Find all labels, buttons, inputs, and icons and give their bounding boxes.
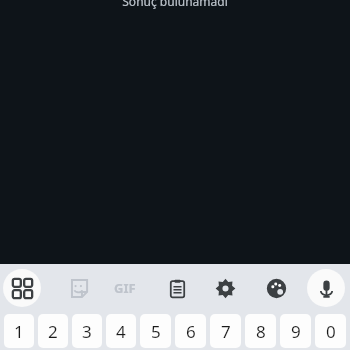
staticText: 0 [326, 320, 336, 343]
button[interactable]: 9 [280, 314, 311, 348]
button[interactable]: Voice input [307, 269, 345, 307]
button[interactable]: Stickers [59, 269, 97, 307]
staticText: 2 [48, 320, 58, 343]
staticText: 5 [151, 320, 161, 343]
staticText: 8 [256, 320, 266, 343]
button[interactable]: 1 [4, 314, 34, 348]
button[interactable]: 7 [210, 314, 241, 348]
staticText: 4 [116, 320, 126, 343]
button[interactable]: Apps [3, 269, 41, 307]
staticText: 7 [221, 320, 231, 343]
button[interactable]: 8 [245, 314, 276, 348]
button[interactable]: 5 [140, 314, 171, 348]
button[interactable]: 3 [72, 314, 102, 348]
button[interactable]: 0 [315, 314, 346, 348]
button[interactable]: Themes [257, 269, 295, 307]
staticText: 3 [82, 320, 92, 343]
staticText: Sonuç bulunamadı [0, 0, 350, 9]
button[interactable]: Settings [206, 269, 244, 307]
staticText: 6 [186, 320, 196, 343]
staticText: 9 [291, 320, 301, 343]
button[interactable]: Clipboard [158, 269, 196, 307]
button[interactable]: GIF [105, 264, 145, 312]
staticText: GIF [114, 279, 136, 297]
button[interactable]: 6 [175, 314, 206, 348]
staticText: 1 [14, 320, 24, 343]
button[interactable]: 2 [38, 314, 68, 348]
button[interactable]: 4 [106, 314, 136, 348]
